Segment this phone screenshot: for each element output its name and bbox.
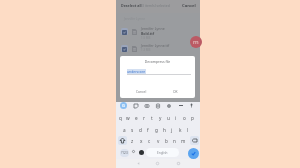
staticText: ?123 xyxy=(121,151,128,155)
staticText: Bold.ttf xyxy=(141,31,155,36)
button[interactable]: More options xyxy=(177,102,184,109)
staticText: m xyxy=(181,138,186,144)
staticText: s xyxy=(131,127,134,133)
button[interactable]: GIF xyxy=(143,102,150,109)
button[interactable]: r xyxy=(140,114,148,122)
button[interactable]: Jennifer Lynne xyxy=(116,25,200,42)
button[interactable]: q xyxy=(116,114,124,122)
button[interactable]: Back xyxy=(135,160,142,167)
button[interactable]: Keyboard settings xyxy=(131,149,136,154)
staticText: p xyxy=(191,115,194,121)
staticText: d xyxy=(139,127,142,133)
staticText: q xyxy=(119,115,122,121)
staticText: j xyxy=(171,127,173,133)
button[interactable]: c xyxy=(146,137,153,145)
staticText: Decompress file xyxy=(120,59,195,64)
staticText: g xyxy=(155,127,158,133)
button[interactable]: x xyxy=(138,137,145,145)
button[interactable]: English xyxy=(146,148,179,157)
button[interactable]: d xyxy=(136,126,144,134)
staticText: G xyxy=(122,103,125,108)
staticText: w xyxy=(126,115,130,121)
button[interactable]: f xyxy=(144,126,152,134)
button[interactable]: o xyxy=(180,114,188,122)
button[interactable]: z xyxy=(129,137,136,145)
button[interactable]: p xyxy=(188,114,196,122)
button[interactable]: a xyxy=(120,126,128,134)
staticText: v xyxy=(157,138,160,144)
button[interactable]: y xyxy=(156,114,164,122)
button[interactable]: Shift xyxy=(118,136,127,145)
staticText: 1.3 MB xyxy=(141,48,151,52)
button[interactable]: Compress xyxy=(190,36,202,48)
button[interactable]: b xyxy=(163,137,170,145)
button[interactable]: j xyxy=(168,126,176,134)
staticText: m xyxy=(193,38,199,46)
button[interactable]: OK xyxy=(173,89,178,93)
button[interactable]: Cancel xyxy=(182,3,196,9)
button[interactable]: Emoji xyxy=(139,150,144,155)
staticText: Deselect all xyxy=(121,3,142,8)
staticText: y xyxy=(159,115,162,121)
staticText: Cancel xyxy=(182,3,196,9)
staticText: l xyxy=(187,127,189,133)
button[interactable]: v xyxy=(155,137,162,145)
staticText: e xyxy=(135,115,138,121)
button[interactable]: Voice input xyxy=(188,102,195,109)
button[interactable]: w xyxy=(124,114,132,122)
button[interactable]: Backspace xyxy=(190,136,199,145)
staticText: Jennifer Lynne.ttf xyxy=(141,43,170,48)
button[interactable]: i xyxy=(172,114,180,122)
button[interactable]: Jennifer Lynne.ttf xyxy=(116,42,200,59)
button[interactable]: Enter xyxy=(188,148,199,159)
button[interactable]: n xyxy=(171,137,178,145)
staticText: k xyxy=(179,127,182,133)
button[interactable]: Stickers xyxy=(154,102,161,109)
button[interactable]: Cancel xyxy=(136,89,147,93)
staticText: b xyxy=(165,138,168,144)
staticText: h xyxy=(163,127,166,133)
staticText: u xyxy=(167,115,170,121)
button[interactable]: Clipboard xyxy=(132,102,139,109)
button[interactable]: Google Search xyxy=(120,102,127,109)
staticText: f xyxy=(147,127,149,133)
staticText: English xyxy=(157,151,168,155)
staticText: 1.5 MB xyxy=(141,36,151,40)
button[interactable]: e xyxy=(132,114,140,122)
staticText: i xyxy=(175,115,177,121)
button[interactable]: k xyxy=(176,126,184,134)
button[interactable]: g xyxy=(152,126,160,134)
button[interactable]: u xyxy=(164,114,172,122)
button[interactable]: ?123 xyxy=(120,149,129,157)
button[interactable]: t xyxy=(148,114,156,122)
button[interactable]: Recents xyxy=(175,160,182,167)
staticText: n xyxy=(173,138,176,144)
button[interactable]: Deselect all xyxy=(121,3,142,8)
staticText: o xyxy=(183,115,186,121)
button[interactable]: l xyxy=(184,126,192,134)
button[interactable]: Home xyxy=(154,160,161,167)
staticText: r xyxy=(143,115,145,121)
staticText: Jennifer Lynne xyxy=(141,26,165,31)
staticText: Cancel xyxy=(136,89,147,93)
staticText: OK xyxy=(173,89,178,93)
staticText: x xyxy=(140,138,143,144)
button[interactable]: m xyxy=(180,137,187,145)
button[interactable]: Settings xyxy=(165,102,172,109)
button[interactable]: h xyxy=(160,126,168,134)
staticText: 3 item(s) selected xyxy=(142,3,170,8)
staticText: a xyxy=(123,127,126,133)
staticText: c xyxy=(148,138,151,144)
button[interactable]: s xyxy=(128,126,136,134)
button[interactable] xyxy=(116,0,200,13)
staticText: z xyxy=(131,138,134,144)
staticText: underscore xyxy=(127,69,146,74)
staticText: t xyxy=(151,115,153,121)
